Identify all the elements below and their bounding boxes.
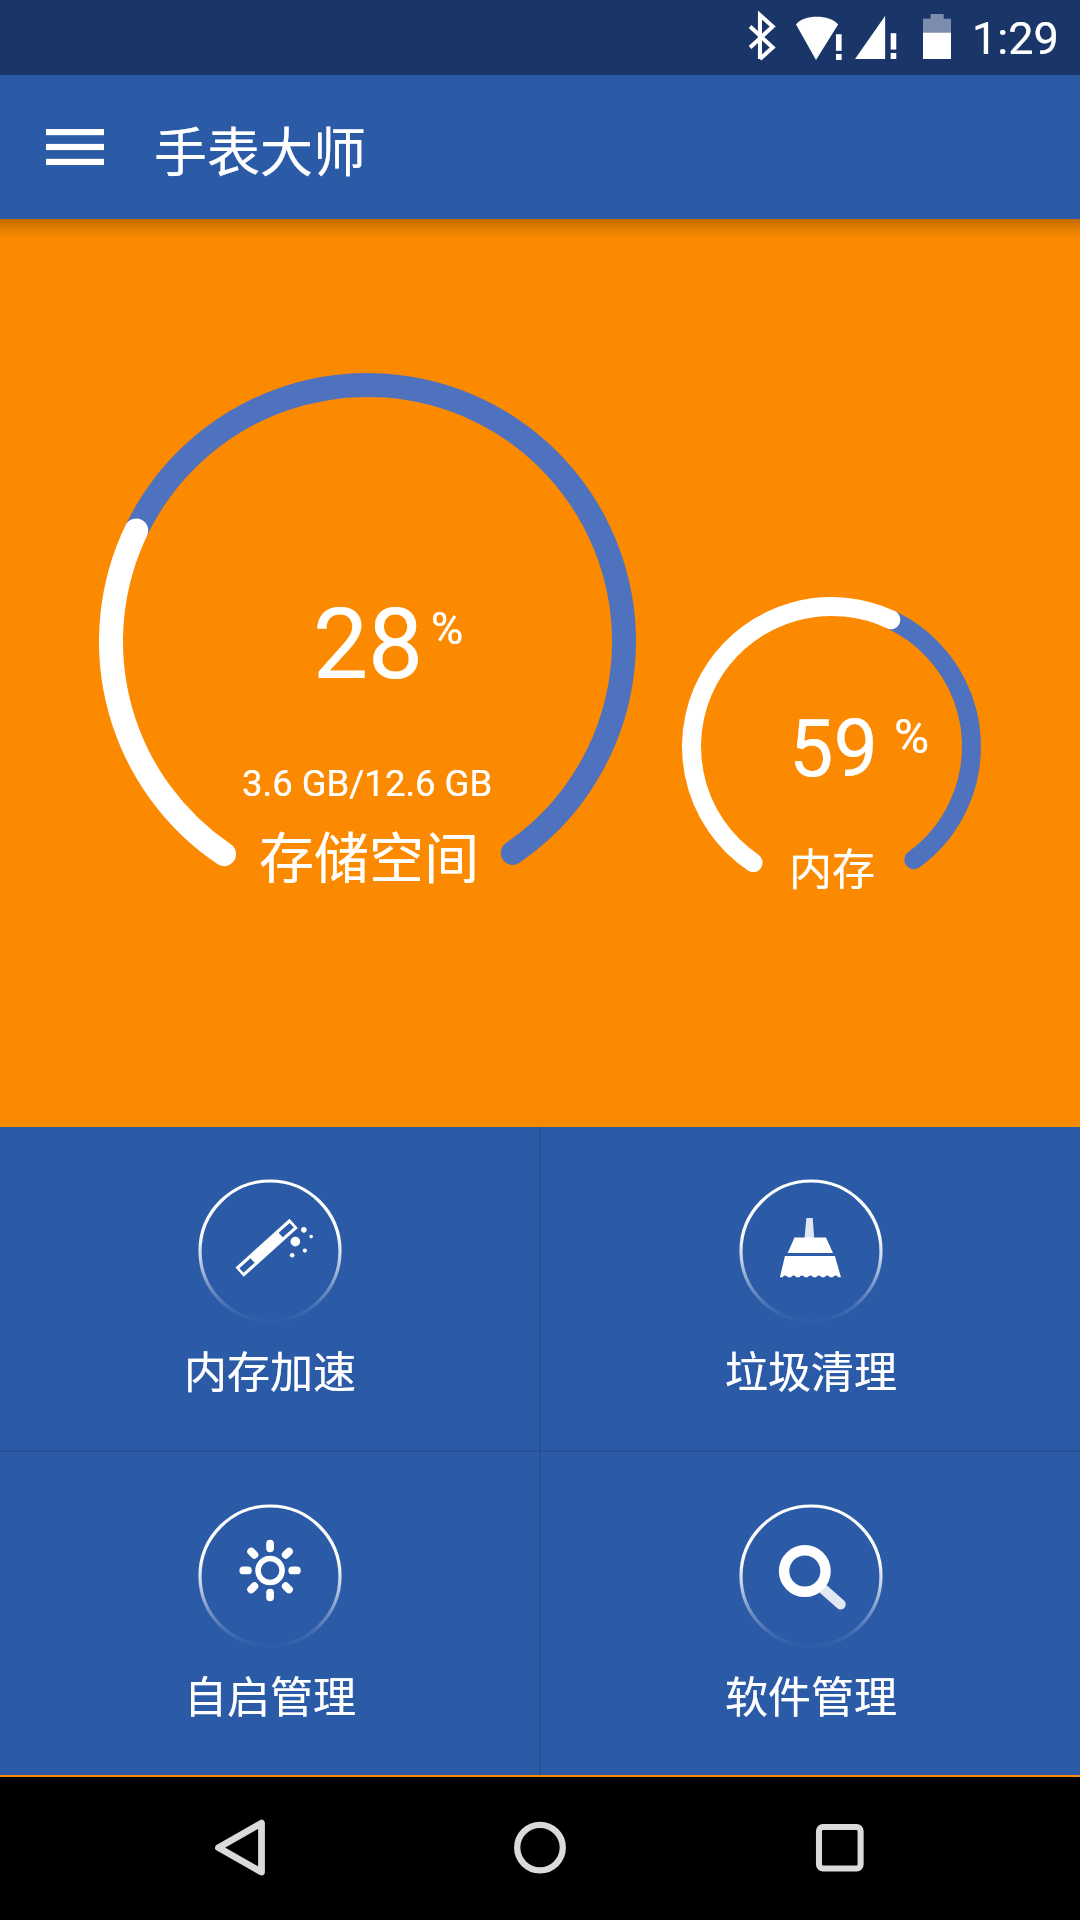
staticText: 28 [313,587,424,702]
button[interactable]: Startup manager [0,1452,539,1725]
staticText: 垃圾清理 [725,1338,897,1400]
staticText: 自启管理 [184,1663,356,1725]
button[interactable]: Home [470,1777,610,1920]
staticText: 软件管理 [725,1663,897,1725]
button[interactable]: Back [170,1777,310,1920]
staticText: 59 [789,703,878,796]
staticText: % [894,708,930,764]
button[interactable]: Memory boost [0,1127,539,1400]
staticText: 3.6 GB/12.6 GB [242,762,493,805]
staticText: 1:29 [972,12,1059,65]
staticText: 手表大师 [154,111,366,188]
staticText: % [431,603,464,655]
button[interactable]: Junk clean [541,1127,1080,1400]
staticText: 存储空间 [259,814,480,894]
button[interactable]: Menu [18,90,132,204]
button[interactable]: Recent apps [770,1777,910,1920]
button[interactable]: App manager [541,1452,1080,1725]
staticText: 内存 [789,835,875,897]
staticText: 内存加速 [184,1338,356,1400]
